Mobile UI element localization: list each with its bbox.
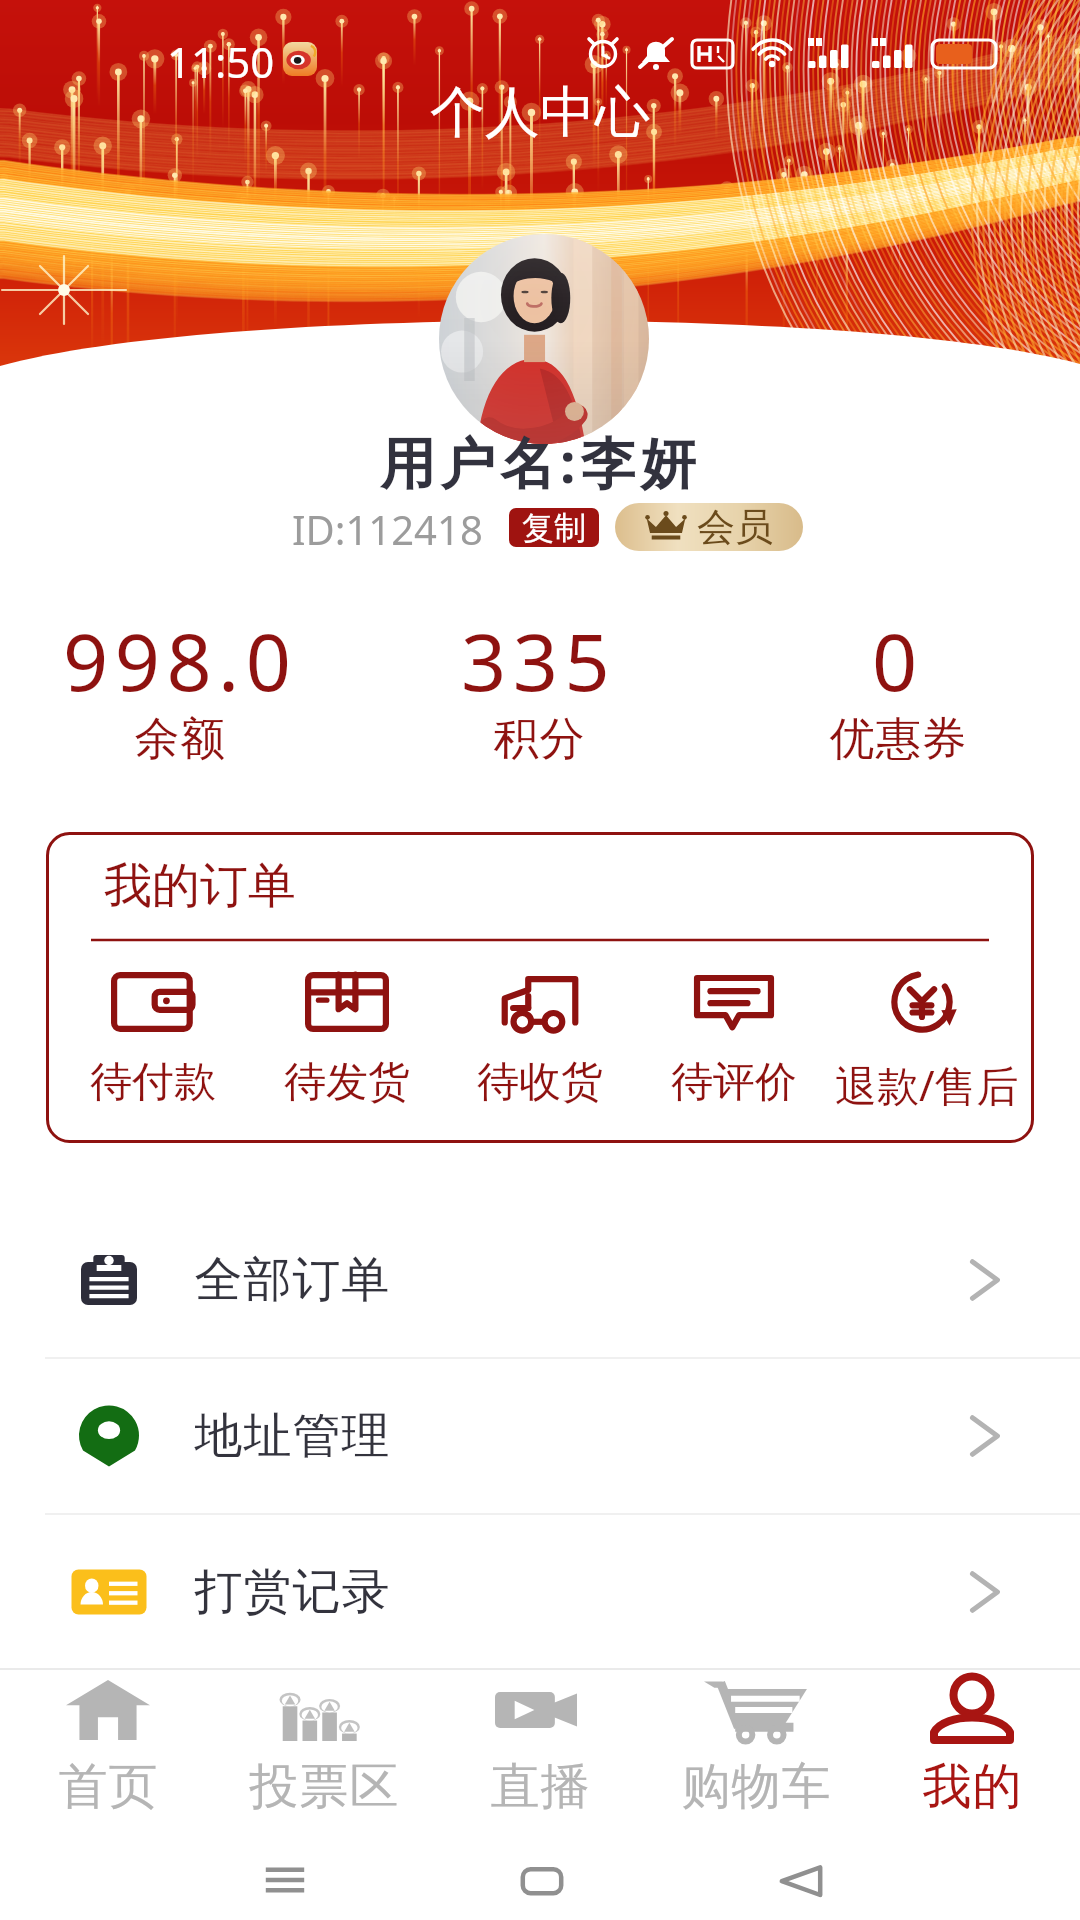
staticText: 首页: [58, 1756, 158, 1818]
staticText: 我的: [922, 1756, 1022, 1818]
button[interactable]: 待付款: [58, 970, 248, 1109]
button[interactable]: 打赏记录: [0, 1515, 1080, 1669]
staticText: 余额: [134, 711, 226, 768]
button[interactable]: 998.0: [27, 607, 333, 772]
staticText: 个人中心: [430, 78, 650, 147]
staticText: 投票区: [249, 1756, 399, 1818]
staticText: 我的订单: [104, 856, 296, 916]
button[interactable]: 地址管理: [0, 1359, 1080, 1513]
button[interactable]: 直播: [432, 1670, 648, 1830]
staticText: 购物车: [681, 1756, 831, 1818]
staticText: 335: [461, 607, 617, 715]
button[interactable]: Menu: [255, 1850, 315, 1910]
staticText: 直播: [490, 1756, 590, 1818]
button[interactable]: 待评价: [639, 970, 829, 1109]
button[interactable]: 待发货: [252, 970, 442, 1109]
staticText: 全部订单: [194, 1250, 390, 1310]
staticText: 998.0: [63, 607, 298, 715]
staticText: 复制: [522, 508, 586, 547]
button[interactable]: 我的: [864, 1670, 1080, 1830]
staticText: 积分: [493, 711, 585, 768]
button[interactable]: 复制: [509, 508, 599, 547]
staticText: ID:112418: [292, 502, 483, 552]
button[interactable]: 投票区: [216, 1670, 432, 1830]
staticText: 待发货: [284, 1056, 410, 1109]
button[interactable]: 退款/售后: [832, 970, 1022, 1113]
button[interactable]: 0: [745, 607, 1051, 772]
button[interactable]: 购物车: [648, 1670, 864, 1830]
button[interactable]: 待收货: [445, 970, 635, 1109]
staticText: 11:50: [167, 33, 275, 90]
staticText: 打赏记录: [194, 1562, 390, 1622]
button[interactable]: Home: [512, 1850, 572, 1910]
button[interactable]: 会员: [615, 503, 803, 551]
staticText: 地址管理: [194, 1406, 390, 1466]
staticText: 优惠券: [829, 711, 967, 768]
button[interactable]: 全部订单: [0, 1203, 1080, 1357]
button[interactable]: Profile photo: [439, 234, 649, 444]
staticText: 用户名:李妍: [380, 424, 701, 499]
staticText: 会员: [697, 503, 773, 551]
staticText: 待评价: [671, 1056, 797, 1109]
button[interactable]: 首页: [0, 1670, 216, 1830]
button[interactable]: Back: [771, 1850, 831, 1910]
staticText: 0: [872, 607, 924, 715]
staticText: 退款/售后: [835, 1056, 1019, 1113]
staticText: 待付款: [90, 1056, 216, 1109]
staticText: 待收货: [477, 1056, 603, 1109]
button[interactable]: 335: [386, 607, 692, 772]
